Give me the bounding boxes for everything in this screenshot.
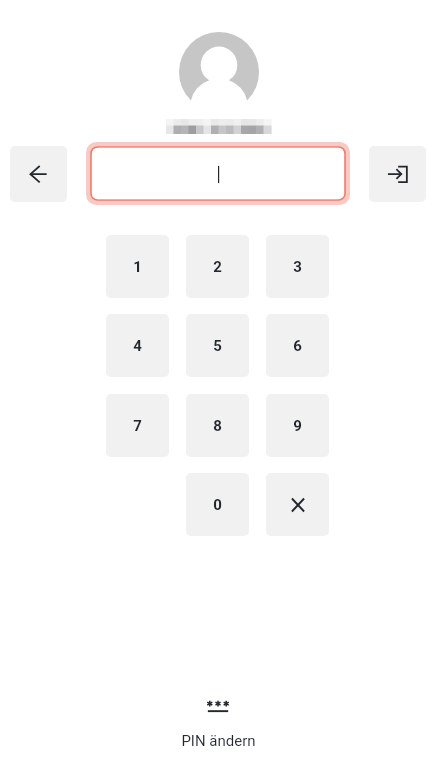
staticText: 0 (213, 496, 222, 514)
staticText: 2 (213, 258, 222, 276)
staticText: PIN ändern (181, 732, 256, 750)
button[interactable]: 9 (266, 394, 329, 457)
button[interactable]: 4 (106, 314, 169, 377)
button[interactable]: 1 (106, 235, 169, 298)
button[interactable]: 3 (266, 235, 329, 298)
button[interactable]: 0 (186, 473, 249, 536)
staticText: 4 (133, 337, 142, 355)
button[interactable]: Zurück (10, 146, 67, 202)
button[interactable]: 7 (106, 394, 169, 457)
staticText: 3 (293, 258, 302, 276)
staticText: 1 (133, 258, 142, 276)
staticText: 7 (133, 417, 142, 435)
button[interactable]: PIN ändern (158, 692, 278, 756)
button[interactable]: 8 (186, 394, 249, 457)
staticText: 8 (213, 417, 222, 435)
staticText: 9 (293, 417, 302, 435)
staticText: 5 (213, 337, 222, 355)
button[interactable]: Löschen (266, 473, 329, 536)
button[interactable]: 5 (186, 314, 249, 377)
button[interactable]: Anmelden (369, 146, 426, 202)
button[interactable] (86, 142, 350, 205)
button[interactable]: 2 (186, 235, 249, 298)
button[interactable]: 6 (266, 314, 329, 377)
staticText: 6 (293, 337, 302, 355)
